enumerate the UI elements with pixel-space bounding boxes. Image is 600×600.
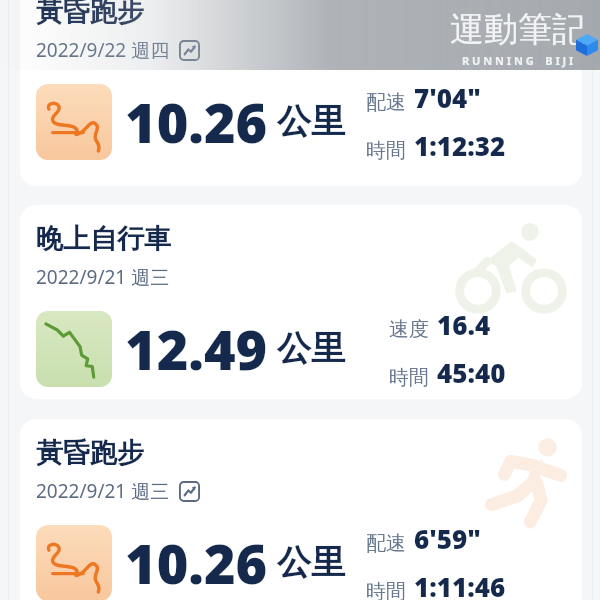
button[interactable]: 黃昏跑步	[20, 0, 582, 186]
staticText: 黃昏跑步	[36, 436, 144, 470]
staticText: 速度	[379, 317, 429, 342]
staticText: R U N N I N G B I J I	[462, 53, 574, 68]
staticText: 45:40	[437, 355, 506, 390]
staticText: 公里	[277, 541, 345, 584]
staticText: 2022/9/21 週三	[36, 264, 170, 290]
staticText: 10.26	[125, 85, 268, 159]
staticText: 時間	[356, 138, 406, 163]
button[interactable]: View chart	[179, 481, 200, 502]
staticText: 晚上自行車	[36, 222, 171, 256]
staticText: 16.4	[437, 307, 491, 342]
staticText: 2022/9/22 週四	[36, 37, 170, 63]
staticText: 時間	[356, 579, 406, 600]
staticText: 配速	[356, 531, 406, 556]
staticText: 6'59"	[414, 521, 481, 556]
staticText: 2022/9/21 週三	[36, 478, 170, 504]
staticText: 1:12:32	[414, 128, 506, 163]
staticText: 公里	[277, 100, 345, 143]
staticText: 1:11:46	[414, 569, 506, 600]
staticText: 公里	[277, 327, 345, 370]
staticText: 10.26	[125, 526, 268, 600]
staticText: 運動筆記	[450, 8, 586, 51]
staticText: 12.49	[125, 312, 268, 386]
staticText: 配速	[356, 90, 406, 115]
button[interactable]: View chart	[179, 40, 200, 61]
staticText: 黃昏跑步	[36, 0, 144, 29]
staticText: 時間	[379, 365, 429, 390]
button[interactable]: 黃昏跑步	[20, 419, 582, 600]
staticText: 7'04"	[414, 80, 481, 115]
button[interactable]: 晚上自行車	[20, 205, 582, 399]
